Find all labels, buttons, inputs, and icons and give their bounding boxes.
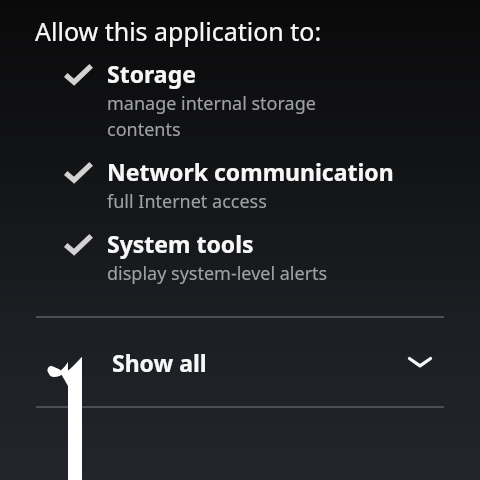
button[interactable]: Network communication <box>0 156 480 214</box>
staticText: Storage <box>107 58 196 89</box>
staticText: full Internet access <box>107 189 267 214</box>
staticText: display system-level alerts <box>107 261 328 286</box>
staticText: Show all <box>112 347 207 378</box>
other: Expand, show all permissions <box>408 354 432 370</box>
button[interactable]: Storage <box>0 58 480 142</box>
staticText: manage internal storage contents <box>107 91 316 142</box>
staticText: Allow this application to: <box>35 14 322 48</box>
staticText: System tools <box>107 228 254 259</box>
button[interactable]: Show all <box>0 318 480 406</box>
button[interactable]: System tools <box>0 228 480 286</box>
staticText: Network communication <box>107 156 394 187</box>
